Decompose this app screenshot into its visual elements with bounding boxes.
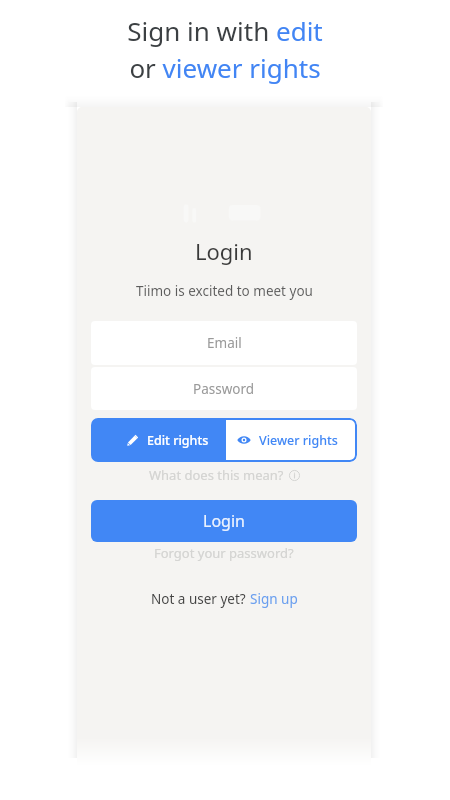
staticText: Email	[207, 334, 242, 352]
button[interactable]: Edit	[91, 418, 224, 462]
other: Edit	[127, 434, 139, 446]
staticText: or viewer rights	[129, 50, 321, 85]
staticText: Edit rights	[147, 432, 209, 449]
staticText: Login	[203, 510, 245, 532]
button[interactable]: Email	[91, 321, 357, 365]
button[interactable]: Password	[91, 367, 357, 410]
button[interactable]: Sign up	[250, 590, 298, 608]
staticText: Not a user yet?	[151, 590, 250, 608]
other: View	[237, 433, 251, 447]
staticText: Login	[195, 236, 253, 266]
staticText: Tiimo is excited to meet you	[136, 282, 313, 300]
staticText: What does this mean?	[149, 466, 284, 484]
button[interactable]: What does this mean?	[149, 466, 300, 484]
button[interactable]: Login	[91, 500, 357, 542]
staticText: Password	[193, 380, 255, 398]
button[interactable]: Forgot your password?	[154, 544, 294, 562]
button[interactable]: View	[224, 418, 357, 462]
staticText: Viewer rights	[259, 432, 338, 449]
staticText: Sign in with edit	[127, 13, 323, 48]
